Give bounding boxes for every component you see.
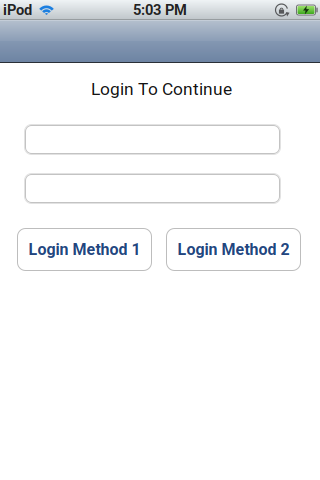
staticText: iPod (3, 1, 32, 19)
staticText: 5:03 PM (133, 1, 187, 19)
staticText: Login To Continue (91, 79, 232, 99)
staticText: Login Method 2 (177, 240, 289, 259)
button[interactable]: Login Method 2 (166, 228, 301, 271)
staticText: Login Method 1 (28, 240, 140, 259)
button[interactable]: Login Method 1 (17, 228, 152, 271)
